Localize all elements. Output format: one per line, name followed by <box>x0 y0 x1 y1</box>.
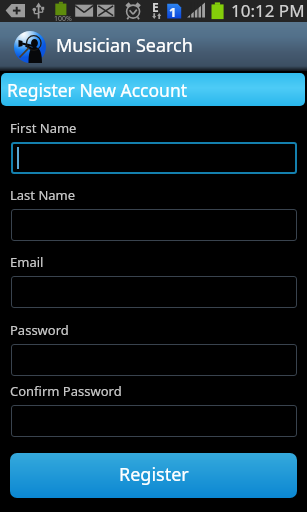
button[interactable] <box>11 405 297 437</box>
staticText: Musician Search <box>56 33 193 58</box>
staticText: Confirm Password <box>10 382 122 400</box>
staticText: Register New Account <box>7 78 188 102</box>
staticText: First Name <box>10 119 77 137</box>
staticText: 100% <box>54 14 72 24</box>
other: App logo <box>14 31 46 63</box>
button[interactable] <box>11 142 297 174</box>
button[interactable]: Register New Account <box>1 73 305 106</box>
button[interactable] <box>11 344 297 376</box>
staticText: Email <box>10 253 44 271</box>
staticText: Last Name <box>10 186 76 204</box>
button[interactable]: Register <box>10 453 297 498</box>
staticText: 1 <box>169 3 177 21</box>
staticText: E <box>152 0 159 15</box>
button[interactable] <box>11 276 297 308</box>
button[interactable] <box>11 209 297 241</box>
staticText: Register <box>119 462 189 487</box>
staticText: 10:12 PM <box>231 0 305 21</box>
staticText: Password <box>10 321 69 339</box>
